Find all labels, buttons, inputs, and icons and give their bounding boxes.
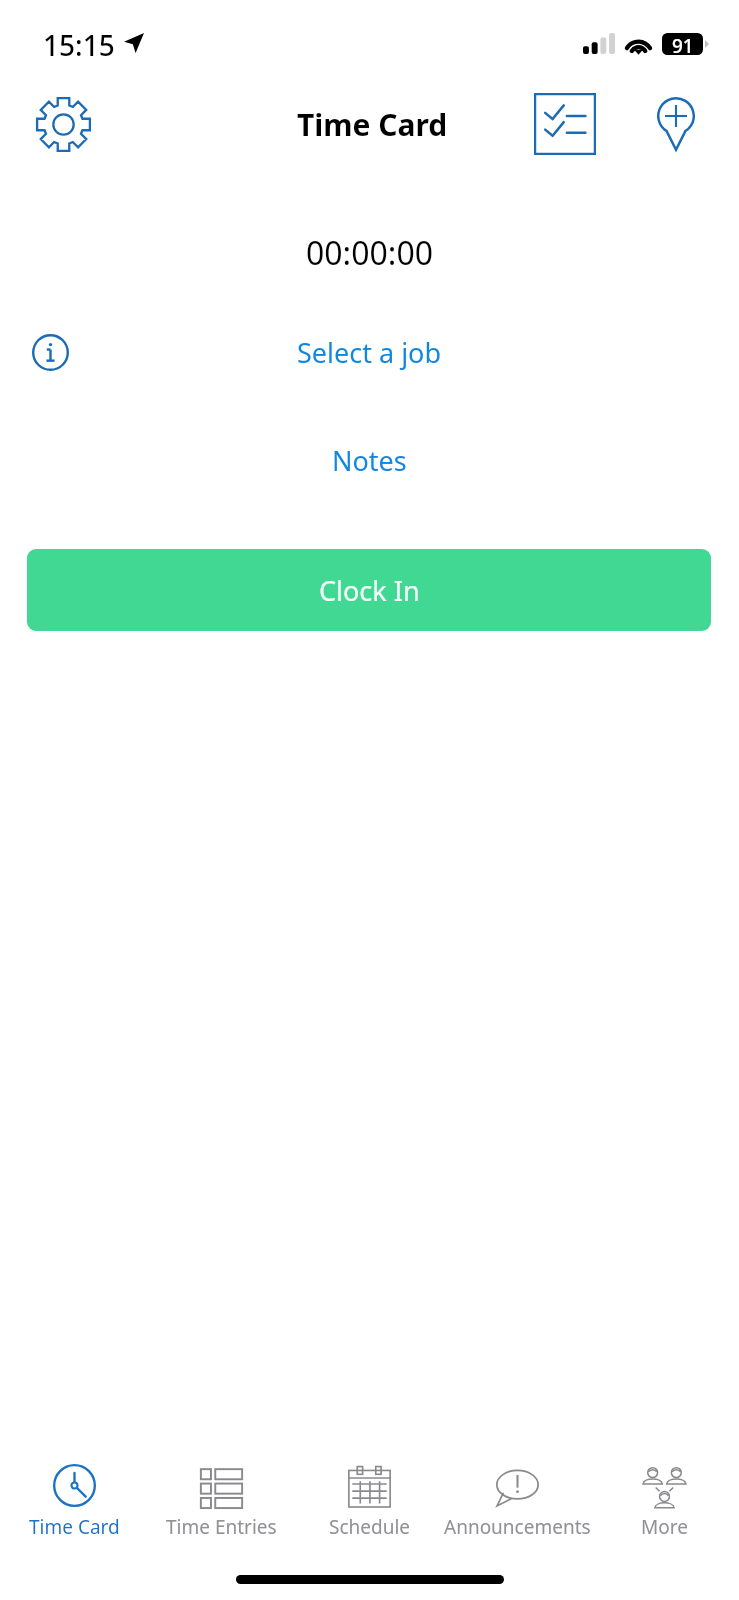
button[interactable]: Time Entries (148, 1443, 295, 1543)
staticText: 15:15 (43, 26, 115, 64)
button[interactable]: Job info (15, 317, 86, 388)
staticText: Schedule (329, 1514, 411, 1537)
staticText: Select a job (297, 334, 442, 371)
staticText: Time Card (29, 1514, 120, 1537)
button[interactable]: Select a job (285, 328, 454, 377)
staticText: 00:00:00 (0, 231, 739, 275)
staticText: Notes (332, 442, 407, 479)
button[interactable]: Add location (640, 88, 712, 160)
button[interactable]: Time Card (1, 1443, 148, 1543)
staticText: Announcements (444, 1514, 591, 1537)
staticText: More (641, 1514, 688, 1537)
staticText: 91 (672, 33, 694, 55)
button[interactable]: Settings (27, 88, 99, 160)
button[interactable]: Schedule (296, 1443, 443, 1543)
staticText: Time Card (297, 104, 448, 145)
staticText: Clock In (319, 572, 420, 609)
button[interactable]: Clock In (27, 549, 711, 631)
button[interactable]: Task list (529, 88, 601, 160)
staticText: Time Entries (166, 1514, 277, 1537)
button[interactable]: Announcements (444, 1443, 591, 1543)
button[interactable]: Notes (320, 436, 419, 485)
button[interactable]: More (591, 1443, 738, 1543)
